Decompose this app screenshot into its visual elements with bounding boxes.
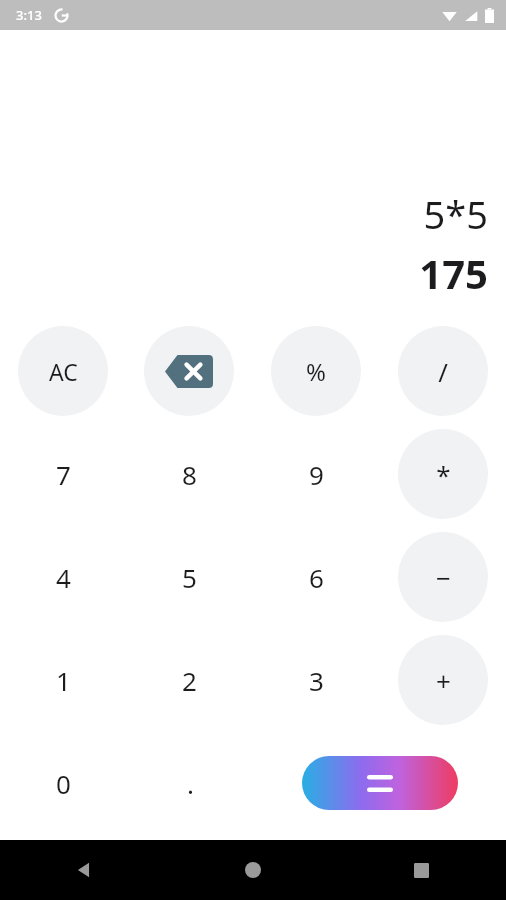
button[interactable]: 8 bbox=[144, 429, 234, 519]
staticText: 5*5 bbox=[423, 188, 488, 240]
button[interactable]: 7 bbox=[18, 429, 108, 519]
button[interactable]: Home bbox=[168, 840, 337, 900]
button[interactable]: 1 bbox=[18, 635, 108, 725]
staticText: AC bbox=[49, 356, 78, 387]
staticText: 175 bbox=[419, 246, 488, 300]
staticText: 5 bbox=[182, 560, 197, 595]
staticText: 9 bbox=[309, 457, 324, 492]
staticText: * bbox=[436, 457, 451, 492]
staticText: 6 bbox=[309, 560, 324, 595]
button[interactable]: 0 bbox=[18, 738, 108, 828]
button[interactable]: 9 bbox=[271, 429, 361, 519]
button[interactable]: + bbox=[398, 635, 488, 725]
button[interactable]: Equals bbox=[302, 756, 458, 810]
staticText: 3 bbox=[309, 663, 324, 698]
button[interactable]: 2 bbox=[144, 635, 234, 725]
button[interactable]: . bbox=[145, 738, 235, 828]
button[interactable]: Backspace bbox=[144, 326, 234, 416]
staticText: 8 bbox=[182, 457, 197, 492]
staticText: . bbox=[187, 766, 194, 801]
button[interactable]: 3 bbox=[271, 635, 361, 725]
staticText: % bbox=[306, 355, 326, 388]
staticText: + bbox=[436, 663, 451, 698]
staticText: / bbox=[438, 354, 448, 389]
button[interactable]: 5 bbox=[144, 532, 234, 622]
button[interactable]: AC bbox=[18, 326, 108, 416]
button[interactable]: % bbox=[271, 326, 361, 416]
button[interactable]: * bbox=[398, 429, 488, 519]
button[interactable]: Back bbox=[0, 840, 168, 900]
staticText: − bbox=[436, 560, 451, 595]
button[interactable]: 6 bbox=[271, 532, 361, 622]
staticText: 2 bbox=[182, 663, 197, 698]
staticText: 7 bbox=[56, 457, 71, 492]
button[interactable]: − bbox=[398, 532, 488, 622]
button[interactable]: 4 bbox=[18, 532, 108, 622]
button[interactable]: Recent apps bbox=[337, 840, 506, 900]
staticText: 0 bbox=[56, 766, 71, 801]
staticText: 1 bbox=[56, 663, 71, 698]
staticText: 4 bbox=[56, 560, 71, 595]
staticText: 3:13 bbox=[16, 6, 42, 24]
button[interactable]: / bbox=[398, 326, 488, 416]
